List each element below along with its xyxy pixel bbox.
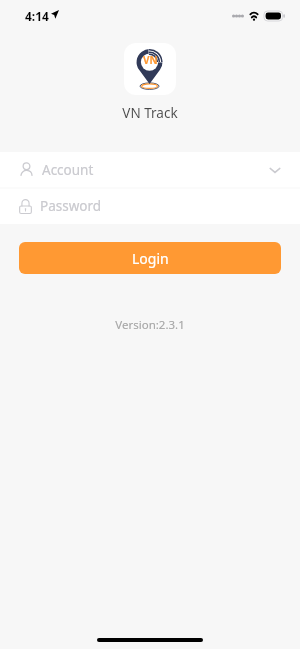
staticText: Login <box>132 249 169 268</box>
button[interactable]: Login <box>19 242 281 274</box>
staticText: Password <box>40 197 102 215</box>
button[interactable]: Show saved accounts <box>267 162 283 178</box>
staticText: 4:14 <box>25 8 49 24</box>
staticText: VN Track <box>0 104 300 122</box>
button[interactable]: Account <box>0 152 300 187</box>
staticText: Version:2.3.1 <box>0 317 300 333</box>
staticText: VN <box>143 53 158 67</box>
staticText: Account <box>42 161 94 179</box>
button[interactable]: Password <box>0 189 300 223</box>
